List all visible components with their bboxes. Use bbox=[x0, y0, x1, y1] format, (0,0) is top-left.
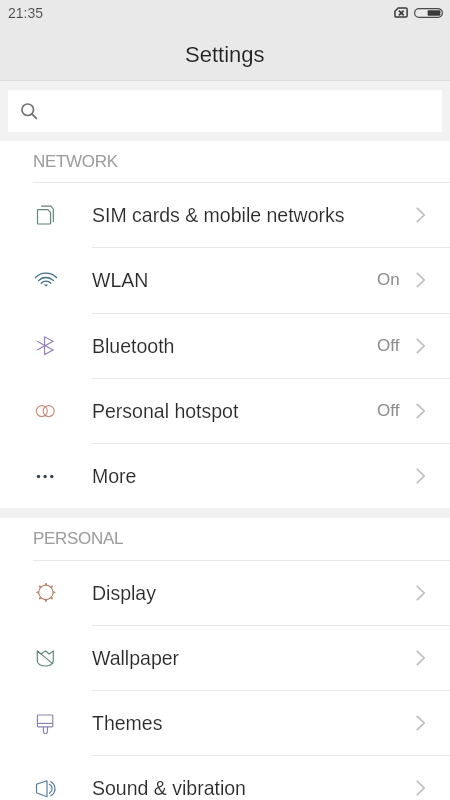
button[interactable]: Bluetooth bbox=[0, 313, 450, 378]
staticText: Wallpaper bbox=[92, 647, 180, 669]
staticText: On bbox=[377, 270, 400, 289]
staticText: Display bbox=[92, 582, 156, 604]
staticText: Bluetooth bbox=[92, 335, 175, 357]
staticText: Off bbox=[377, 401, 400, 420]
button[interactable]: Wallpaper bbox=[0, 625, 450, 690]
staticText: SIM cards & mobile networks bbox=[92, 204, 345, 226]
staticText: Themes bbox=[92, 712, 163, 734]
button[interactable]: Search bbox=[8, 90, 442, 132]
button[interactable]: SIM cards & mobile networks bbox=[0, 182, 450, 247]
staticText: NETWORK bbox=[33, 152, 118, 171]
staticText: PERSONAL bbox=[33, 529, 124, 548]
button[interactable]: WLAN bbox=[0, 247, 450, 312]
staticText: Settings bbox=[185, 42, 265, 67]
staticText: More bbox=[92, 465, 137, 487]
staticText: Sound & vibration bbox=[92, 777, 246, 799]
button[interactable]: More bbox=[0, 443, 450, 508]
staticText: Off bbox=[377, 336, 400, 355]
button[interactable]: Themes bbox=[0, 690, 450, 755]
staticText: WLAN bbox=[92, 269, 149, 291]
staticText: Personal hotspot bbox=[92, 400, 239, 422]
button[interactable]: Sound & vibration bbox=[0, 755, 450, 800]
button[interactable]: Display bbox=[0, 560, 450, 625]
button[interactable]: Personal hotspot bbox=[0, 378, 450, 443]
staticText: 21:35 bbox=[8, 5, 44, 21]
